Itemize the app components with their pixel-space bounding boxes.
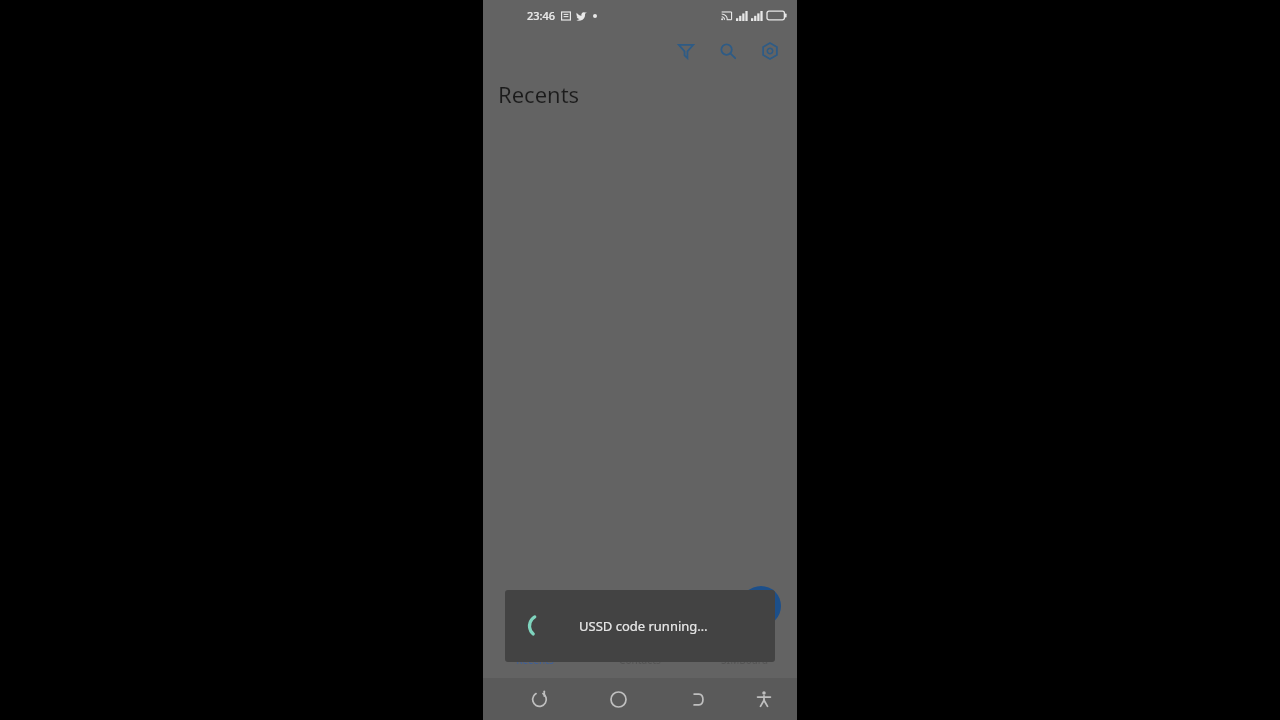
button[interactable]: Contacts xyxy=(587,642,692,678)
button[interactable]: Accessibility xyxy=(747,682,781,716)
staticText: Contacts xyxy=(619,653,661,667)
staticText: Recents xyxy=(516,653,554,667)
button[interactable]: Settings xyxy=(749,30,791,72)
button[interactable]: Dialpad xyxy=(741,586,781,626)
button[interactable]: SIMBoard xyxy=(692,642,797,678)
staticText: 23:46 xyxy=(527,8,556,23)
staticText: SIMBoard xyxy=(721,653,768,667)
staticText: Recents xyxy=(498,79,580,109)
button[interactable]: Recent apps xyxy=(522,682,556,716)
button[interactable]: Filter xyxy=(665,30,707,72)
button[interactable]: Recents xyxy=(483,642,587,678)
button[interactable]: Search xyxy=(707,30,749,72)
button[interactable]: Back xyxy=(680,682,714,716)
staticText: USSD code running… xyxy=(579,617,759,635)
button[interactable]: Home xyxy=(601,682,635,716)
